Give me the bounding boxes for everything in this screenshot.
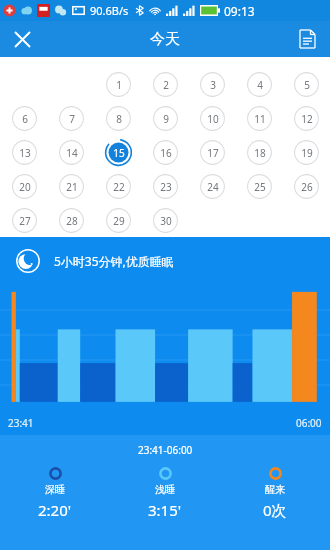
staticText: 2 — [163, 78, 169, 92]
staticText: 15 — [113, 146, 125, 160]
button[interactable]: 19 — [293, 139, 320, 166]
staticText: 18 — [254, 146, 266, 160]
button[interactable]: 14 — [58, 139, 85, 166]
staticText: 17 — [207, 146, 219, 160]
button[interactable]: 1 — [105, 71, 132, 98]
staticText: 12 — [301, 112, 313, 126]
button[interactable]: 4 — [246, 71, 273, 98]
staticText: 今天 — [150, 30, 180, 49]
button[interactable]: 11 — [246, 105, 273, 132]
staticText: 3 — [210, 78, 216, 92]
staticText: 19 — [301, 146, 313, 160]
staticText: 2:20' — [38, 500, 72, 520]
button[interactable]: 27 — [11, 207, 38, 234]
button[interactable]: 28 — [58, 207, 85, 234]
staticText: 浅睡 — [155, 483, 175, 496]
button[interactable]: 5小时35分钟,优质睡眠 — [0, 237, 330, 285]
button[interactable]: 浅睡 — [110, 467, 220, 520]
button[interactable]: 26 — [293, 173, 320, 200]
button[interactable]: 8 — [105, 105, 132, 132]
button[interactable]: 21 — [58, 173, 85, 200]
button[interactable]: 30 — [152, 207, 179, 234]
button[interactable]: Report — [292, 24, 322, 54]
staticText: 20 — [19, 180, 31, 194]
button[interactable]: 20 — [11, 173, 38, 200]
staticText: 3:15' — [148, 500, 182, 520]
staticText: 6 — [22, 112, 28, 126]
button[interactable]: 18 — [246, 139, 273, 166]
staticText: 16 — [160, 146, 172, 160]
staticText: 5 — [304, 78, 310, 92]
staticText: 9 — [163, 112, 169, 126]
staticText: 深睡 — [45, 483, 65, 496]
button[interactable]: 12 — [293, 105, 320, 132]
button[interactable]: 23 — [152, 173, 179, 200]
staticText: 90.6B/s — [90, 3, 129, 18]
staticText: 23 — [160, 180, 172, 194]
staticText: 1 — [116, 78, 122, 92]
button[interactable]: 15 — [105, 139, 132, 166]
staticText: 22 — [113, 180, 125, 194]
staticText: 29 — [113, 214, 125, 228]
staticText: 23:41 — [8, 416, 34, 430]
staticText: 0次 — [263, 500, 287, 520]
staticText: 13 — [19, 146, 31, 160]
staticText: 09:13 — [224, 3, 255, 19]
staticText: 5小时35分钟,优质睡眠 — [54, 253, 174, 269]
button[interactable]: 22 — [105, 173, 132, 200]
button[interactable]: 5 — [293, 71, 320, 98]
staticText: 25 — [254, 180, 266, 194]
staticText: 11 — [254, 112, 266, 126]
staticText: 4 — [257, 78, 263, 92]
button[interactable]: 25 — [246, 173, 273, 200]
button[interactable]: 16 — [152, 139, 179, 166]
staticText: 27 — [19, 214, 31, 228]
button[interactable]: 7 — [58, 105, 85, 132]
staticText: 23:41-06:00 — [138, 443, 193, 457]
staticText: 28 — [66, 214, 78, 228]
staticText: 8 — [116, 112, 122, 126]
staticText: 24 — [207, 180, 219, 194]
staticText: 14 — [66, 146, 78, 160]
button[interactable]: 9 — [152, 105, 179, 132]
button[interactable]: 17 — [199, 139, 226, 166]
button[interactable]: 29 — [105, 207, 132, 234]
staticText: 10 — [207, 112, 219, 126]
staticText: 26 — [301, 180, 313, 194]
staticText: 06:00 — [296, 416, 322, 430]
button[interactable]: 醒来 — [220, 467, 330, 520]
staticText: 醒来 — [265, 483, 285, 496]
staticText: 21 — [66, 180, 78, 194]
button[interactable]: 6 — [11, 105, 38, 132]
button[interactable]: 10 — [199, 105, 226, 132]
button[interactable]: 3 — [199, 71, 226, 98]
staticText: 7 — [69, 112, 75, 126]
button[interactable]: 13 — [11, 139, 38, 166]
staticText: 30 — [160, 214, 172, 228]
button[interactable]: 2 — [152, 71, 179, 98]
button[interactable]: 24 — [199, 173, 226, 200]
button[interactable]: 深睡 — [0, 467, 110, 520]
button[interactable]: Close — [6, 23, 38, 55]
